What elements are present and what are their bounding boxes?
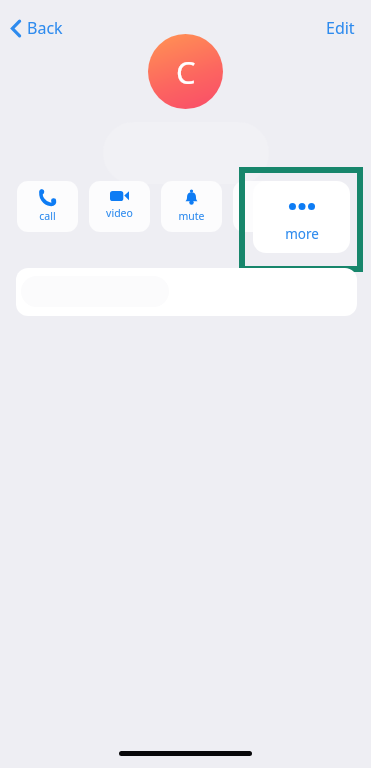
button[interactable]: s — [233, 181, 294, 232]
button[interactable]: mute — [161, 181, 222, 232]
button[interactable]: Edit — [321, 10, 360, 46]
staticText: C — [176, 51, 196, 93]
button[interactable]: Back — [6, 10, 68, 46]
staticText: mute — [178, 209, 205, 223]
button[interactable]: call — [17, 181, 78, 232]
staticText: Edit — [326, 17, 355, 39]
button[interactable] — [16, 268, 357, 316]
button[interactable]: video — [89, 181, 150, 232]
staticText: Back — [27, 17, 63, 39]
staticText: call — [39, 209, 56, 223]
button[interactable]: more — [253, 181, 350, 253]
staticText: more — [285, 225, 319, 243]
staticText: video — [106, 206, 133, 220]
